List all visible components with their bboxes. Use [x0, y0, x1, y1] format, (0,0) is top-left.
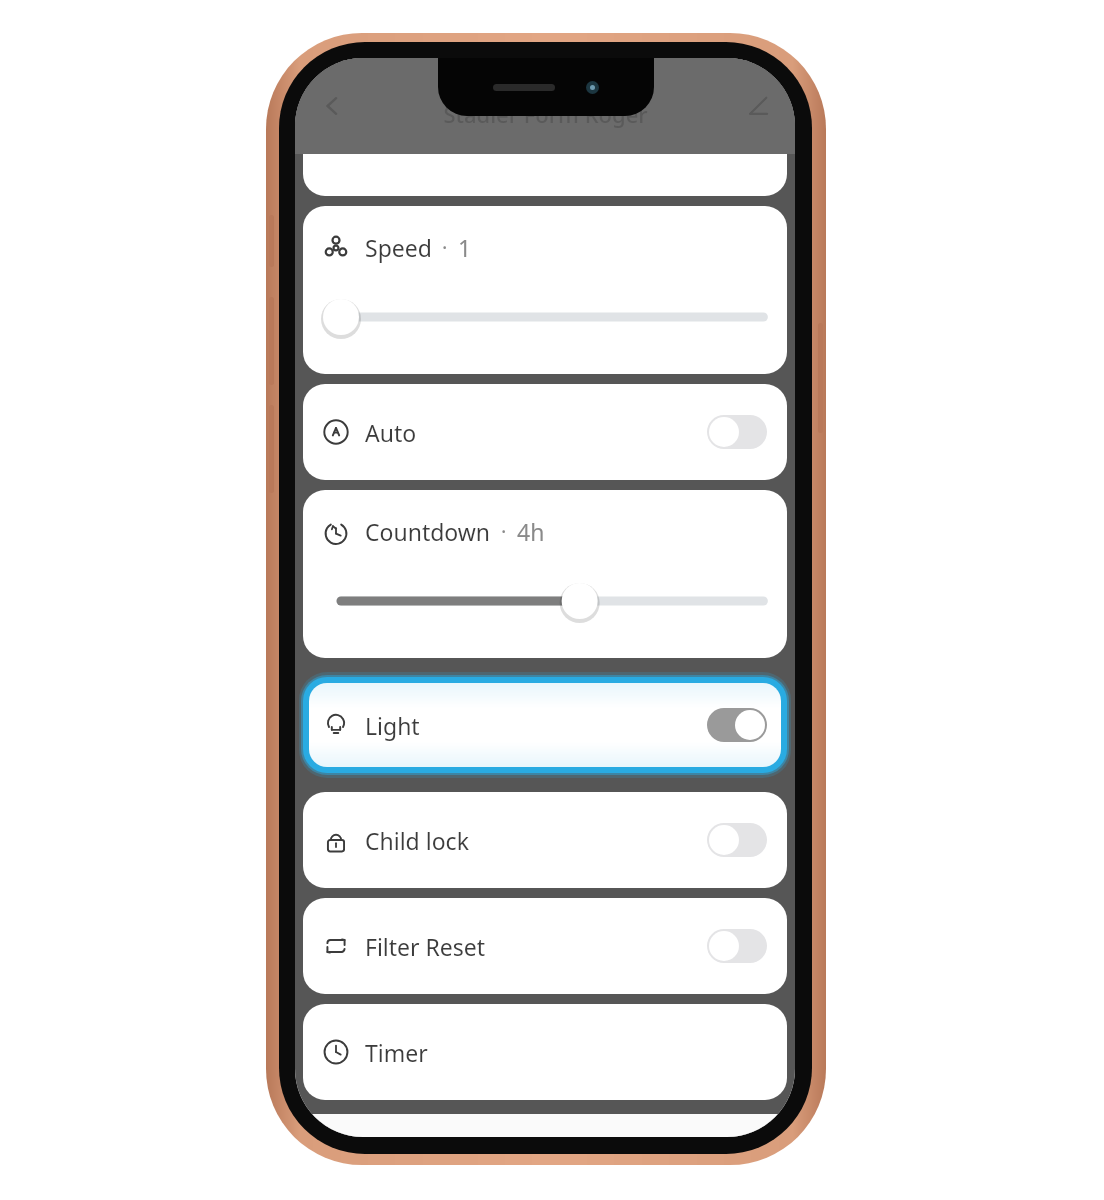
button[interactable]: Countdown slider	[323, 581, 767, 621]
button[interactable]: Toggle off	[707, 929, 767, 963]
staticText: Speed	[365, 232, 432, 263]
button[interactable]: Speed	[303, 206, 787, 374]
staticText: ·	[442, 234, 448, 261]
staticText: Light	[365, 710, 420, 741]
button[interactable]: Toggle off	[707, 823, 767, 857]
button[interactable]: Timer	[303, 1004, 787, 1100]
staticText: 4h	[517, 516, 545, 547]
button[interactable]: Filter Reset	[303, 898, 787, 994]
button[interactable]: Toggle off	[707, 415, 767, 449]
staticText: Auto	[365, 417, 417, 448]
button[interactable]: Edit	[735, 83, 781, 129]
button[interactable]: Child lock	[303, 792, 787, 888]
staticText: Timer	[365, 1037, 428, 1068]
button[interactable]: Countdown	[303, 490, 787, 658]
button[interactable]: Auto	[303, 384, 787, 480]
staticText: Child lock	[365, 825, 469, 856]
staticText: 1	[458, 232, 472, 263]
button[interactable]: Toggle on	[707, 708, 767, 742]
staticText: Filter Reset	[365, 931, 486, 962]
staticText: Countdown	[365, 516, 491, 547]
staticText: Stadler Form Roger	[443, 99, 648, 129]
staticText: ·	[501, 518, 507, 545]
button[interactable]: Light	[309, 683, 781, 767]
button[interactable]: Speed slider	[323, 297, 767, 337]
